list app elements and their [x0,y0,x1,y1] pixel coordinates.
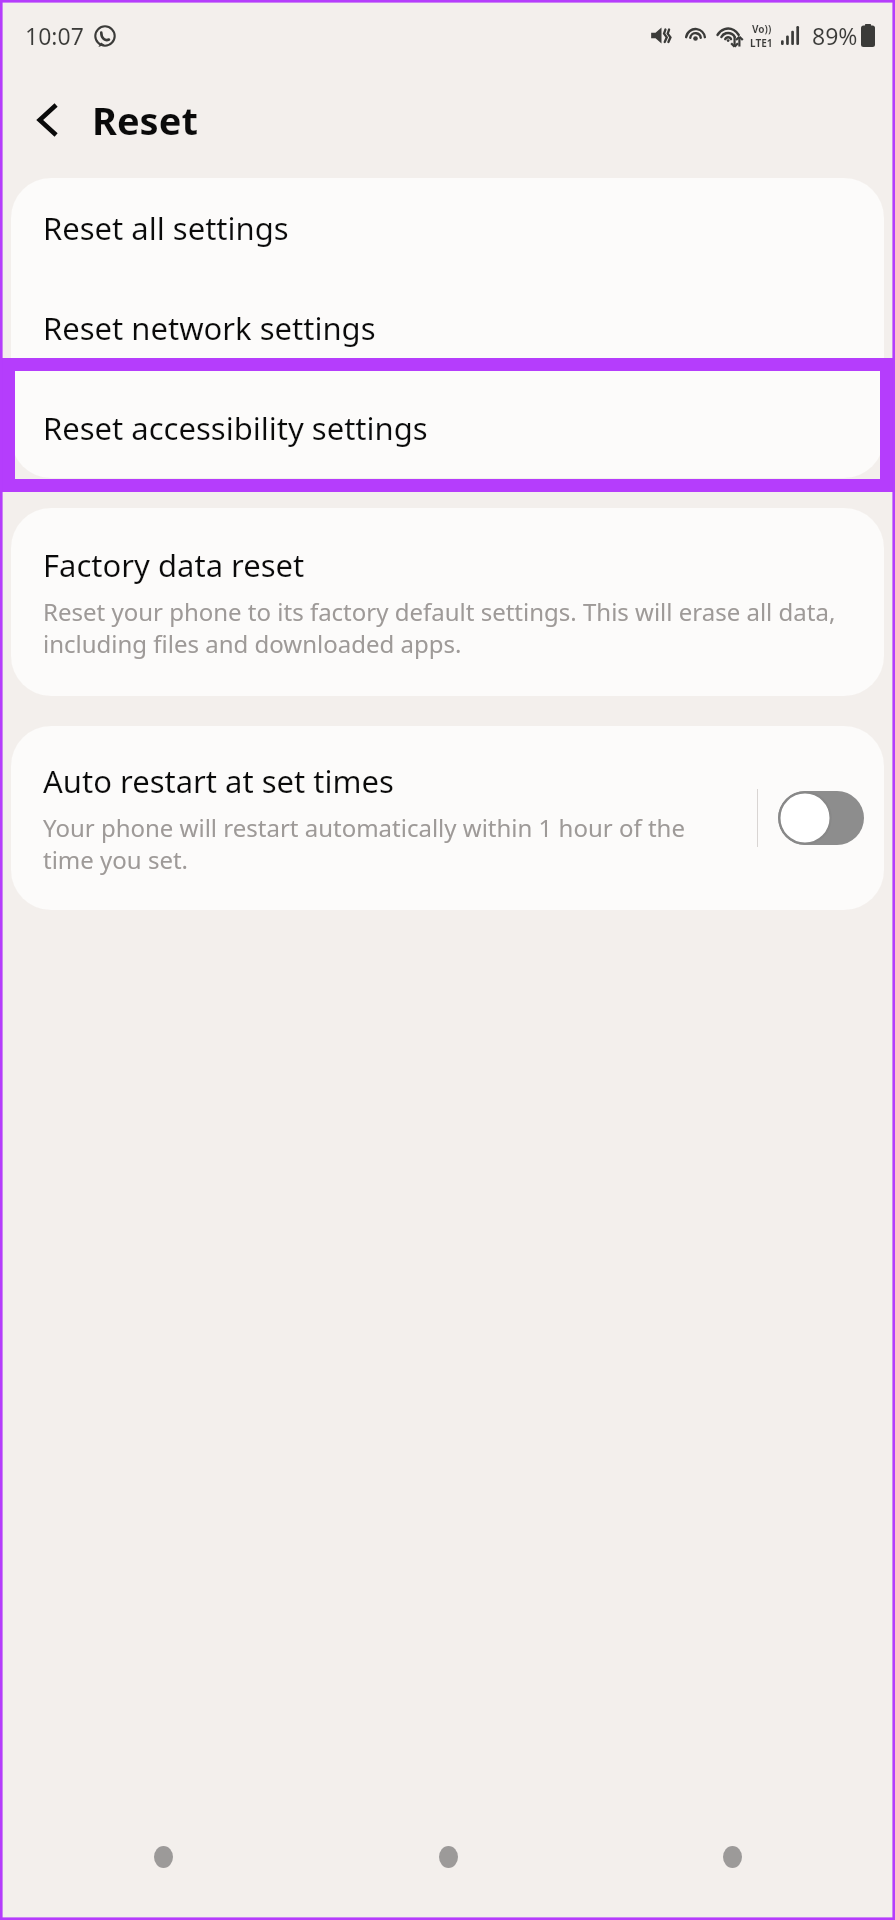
staticText: 10:07 [25,20,84,51]
button[interactable]: Reset all settings [11,178,884,278]
staticText: Reset [92,94,198,146]
staticText: Your phone will restart automatically wi… [43,811,741,876]
button[interactable]: Reset accessibility settings [11,378,884,478]
button[interactable]: Back [20,92,76,148]
button[interactable]: Auto restart at set times toggle, off [778,791,864,845]
button[interactable]: Reset network settings [11,278,884,378]
button[interactable]: Home [425,1834,471,1880]
staticText: Vo)) [752,22,772,36]
button[interactable]: Auto restart at set times [11,726,757,910]
staticText: Factory data reset [43,544,305,586]
staticText: Reset all settings [43,207,289,249]
staticText: 89% [812,20,858,51]
staticText: Reset accessibility settings [43,407,428,449]
staticText: Reset network settings [43,307,376,349]
button[interactable]: Recents [140,1834,186,1880]
staticText: LTE1 [750,36,773,50]
staticText: Auto restart at set times [43,760,394,802]
button[interactable]: Factory data reset [11,508,884,696]
staticText: Reset your phone to its factory default … [43,595,860,660]
button[interactable]: Back [709,1834,755,1880]
